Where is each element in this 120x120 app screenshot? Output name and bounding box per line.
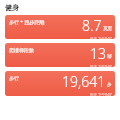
staticText: 昨天 下午8:07 bbox=[90, 64, 112, 67]
button[interactable]: 步行 bbox=[5, 71, 115, 96]
staticText: 8.7 bbox=[82, 16, 102, 35]
staticText: 步行 bbox=[9, 75, 19, 81]
staticText: 健身 bbox=[5, 3, 19, 12]
staticText: 13 bbox=[90, 44, 106, 63]
staticText: 步 bbox=[107, 82, 112, 88]
button[interactable]: 爬樓梯段數 bbox=[5, 43, 115, 67]
staticText: 昨天 下午8:07 bbox=[90, 92, 112, 96]
staticText: 層 bbox=[107, 54, 112, 60]
staticText: 19,641 bbox=[62, 72, 106, 91]
button[interactable]: 步行 + 跑步距離 bbox=[5, 15, 115, 39]
staticText: 英里 bbox=[103, 26, 112, 32]
staticText: 步行 + 跑步距離 bbox=[9, 19, 45, 26]
staticText: 爬樓梯段數 bbox=[9, 47, 34, 53]
staticText: 昨天 下午8:07 bbox=[90, 36, 112, 39]
